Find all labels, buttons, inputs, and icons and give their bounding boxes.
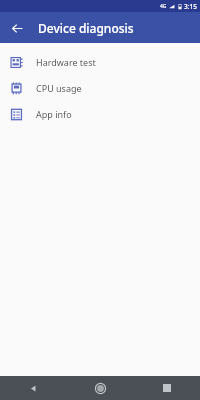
staticText: CPU usage — [36, 82, 82, 94]
staticText: 3:15 — [184, 2, 197, 11]
staticText: App info — [36, 108, 72, 120]
button[interactable]: Back — [17, 376, 49, 400]
button[interactable]: Home — [84, 376, 116, 400]
staticText: Hardware test — [36, 56, 96, 68]
button[interactable]: Recent apps — [151, 376, 183, 400]
staticText: Device diagnosis — [38, 20, 134, 36]
button[interactable]: Back — [6, 17, 28, 39]
button[interactable]: Hardware test — [0, 49, 200, 75]
button[interactable]: CPU usage — [0, 75, 200, 101]
button[interactable]: App info — [0, 101, 200, 127]
staticText: 4G — [160, 3, 167, 10]
